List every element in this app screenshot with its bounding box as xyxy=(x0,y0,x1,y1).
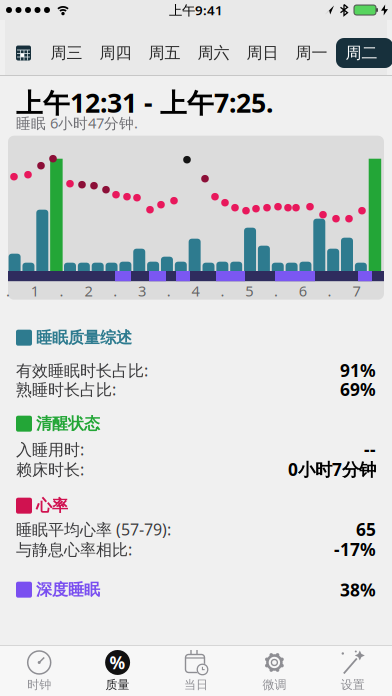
staticText: 心率 xyxy=(36,496,68,516)
button[interactable]: 周五 xyxy=(140,38,189,68)
staticText: 与静息心率相比: xyxy=(16,539,132,560)
staticText: 熟睡时长占比: xyxy=(16,379,116,400)
button[interactable]: % xyxy=(78,646,157,696)
staticText: 时钟 xyxy=(27,677,51,692)
button[interactable]: 时钟 xyxy=(0,646,78,696)
staticText: 0小时7分钟 xyxy=(288,458,376,481)
staticText: 设置 xyxy=(341,677,365,692)
staticText: 周日 xyxy=(246,43,278,63)
staticText: -17% xyxy=(334,538,376,561)
staticText: 微调 xyxy=(262,677,286,692)
staticText: 91% xyxy=(340,359,376,382)
button[interactable]: 设置 xyxy=(314,646,392,696)
staticText: . xyxy=(328,281,332,300)
staticText: . xyxy=(274,281,278,300)
staticText: 69% xyxy=(340,378,376,401)
staticText: % xyxy=(110,651,126,674)
staticText: 38% xyxy=(340,578,376,601)
staticText: 65 xyxy=(356,518,376,541)
staticText: 1 xyxy=(31,281,39,300)
staticText: . xyxy=(6,281,10,300)
staticText: . xyxy=(220,281,224,300)
staticText: 周四 xyxy=(99,43,131,63)
staticText: 7 xyxy=(352,281,360,300)
staticText: 清醒状态 xyxy=(36,414,100,434)
staticText: 有效睡眠时长占比: xyxy=(16,360,148,381)
staticText: 4 xyxy=(192,281,200,300)
button[interactable]: 周一 xyxy=(287,38,336,68)
button[interactable]: 周三 xyxy=(42,38,91,68)
button[interactable]: 周六 xyxy=(189,38,238,68)
staticText: 周二 xyxy=(345,43,377,63)
staticText: 深度睡眠 xyxy=(36,580,100,600)
staticText: -- xyxy=(364,438,376,461)
staticText: 入睡用时: xyxy=(16,439,84,460)
staticText: 2 xyxy=(84,281,92,300)
staticText: 周六 xyxy=(197,43,229,63)
staticText: 周三 xyxy=(50,43,82,63)
button[interactable]: 周二 xyxy=(336,38,387,68)
button[interactable]: 周日 xyxy=(238,38,287,68)
staticText: 睡眠质量综述 xyxy=(36,328,132,348)
button[interactable]: 周四 xyxy=(91,38,140,68)
staticText: 质量 xyxy=(106,677,130,692)
staticText: . xyxy=(167,281,171,300)
staticText: 上午9:41 xyxy=(169,1,223,19)
staticText: 周一 xyxy=(295,43,327,63)
staticText: 睡眠平均心率 (57-79): xyxy=(16,519,171,540)
staticText: 3 xyxy=(138,281,146,300)
button[interactable]: 微调 xyxy=(235,646,314,696)
button[interactable] xyxy=(5,45,42,60)
staticText: 睡眠 6小时47分钟. xyxy=(16,113,138,133)
staticText: 5 xyxy=(245,281,253,300)
staticText: 6 xyxy=(299,281,307,300)
button[interactable]: 当日 xyxy=(157,646,235,696)
staticText: 上午12:31 - 上午7:25. xyxy=(16,85,273,120)
staticText: . xyxy=(60,281,64,300)
staticText: 周五 xyxy=(148,43,180,63)
staticText: 赖床时长: xyxy=(16,459,84,480)
staticText: 当日 xyxy=(184,677,208,692)
staticText: . xyxy=(113,281,117,300)
